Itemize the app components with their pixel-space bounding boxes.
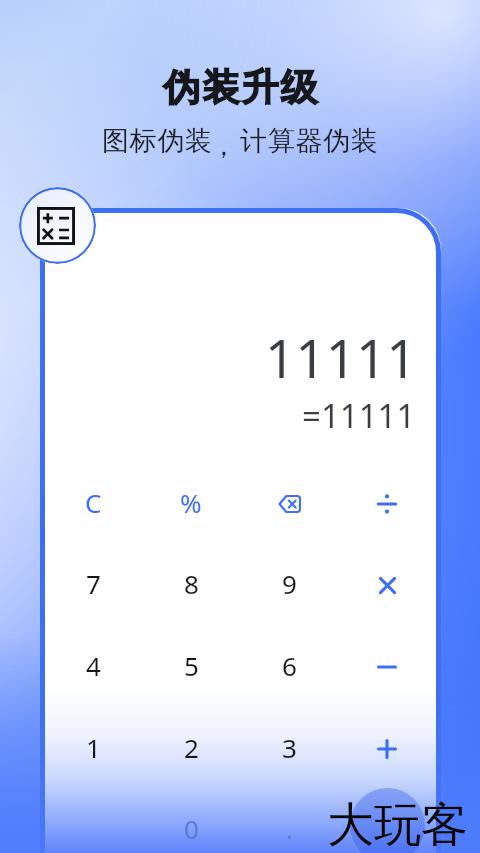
staticText: 5: [184, 648, 199, 683]
staticText: 计算器伪装: [240, 124, 378, 158]
staticText: 1: [86, 730, 101, 765]
staticText: =11111: [302, 393, 416, 438]
button[interactable]: 3: [240, 713, 338, 785]
button[interactable]: 5: [142, 631, 240, 703]
staticText: 大玩客: [327, 796, 468, 853]
staticText: 8: [184, 566, 199, 601]
button[interactable]: 0: [142, 794, 240, 853]
staticText: ，: [210, 129, 237, 163]
staticText: 0: [184, 811, 199, 846]
staticText: 2: [184, 730, 199, 765]
staticText: 7: [86, 566, 101, 601]
button[interactable]: Backspace: [240, 468, 338, 540]
button[interactable]: 8: [142, 549, 240, 621]
staticText: 9: [282, 566, 297, 601]
button[interactable]: 2: [142, 713, 240, 785]
staticText: %: [180, 485, 202, 520]
button[interactable]: 7: [45, 549, 142, 621]
button[interactable]: C: [45, 468, 142, 540]
staticText: 3: [282, 730, 297, 765]
staticText: .: [286, 811, 293, 846]
staticText: 6: [282, 648, 297, 683]
button[interactable]: 6: [240, 631, 338, 703]
staticText: C: [85, 485, 102, 520]
staticText: 11111: [265, 321, 417, 393]
staticText: 伪装升级: [163, 64, 320, 111]
button[interactable]: Calculator disguise icon: [19, 187, 96, 264]
button[interactable]: 9: [240, 549, 338, 621]
button[interactable]: Divide: [338, 468, 436, 540]
button[interactable]: Multiply: [338, 549, 436, 621]
button[interactable]: 4: [45, 631, 142, 703]
staticText: 4: [86, 648, 101, 683]
button[interactable]: Minus: [338, 631, 436, 703]
button[interactable]: Plus: [338, 713, 436, 785]
button[interactable]: 1: [45, 713, 142, 785]
button[interactable]: .: [240, 794, 338, 853]
button[interactable]: %: [142, 468, 240, 540]
staticText: 图标伪装: [102, 124, 213, 158]
